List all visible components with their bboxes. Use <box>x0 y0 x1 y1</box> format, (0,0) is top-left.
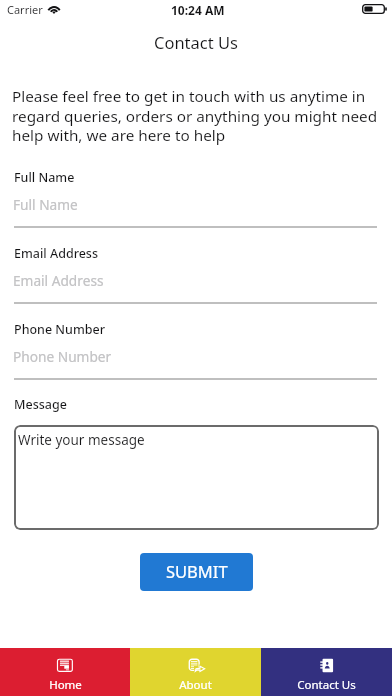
staticText: Write your message <box>18 431 145 449</box>
staticText: Email Address <box>14 245 99 262</box>
staticText: Carrier <box>7 2 43 17</box>
staticText: Phone Number <box>14 321 105 338</box>
staticText: Phone Number <box>13 347 112 366</box>
button[interactable]: Contact Us <box>261 648 392 696</box>
button[interactable]: Phone Number <box>0 320 392 380</box>
staticText: SUBMIT <box>166 560 228 582</box>
staticText: Home <box>49 677 82 693</box>
button[interactable]: SUBMIT <box>140 553 253 591</box>
staticText: Full Name <box>14 169 75 186</box>
button[interactable]: Full Name <box>0 168 392 228</box>
staticText: Message <box>14 396 67 413</box>
button[interactable]: About <box>130 648 261 696</box>
staticText: Contact Us <box>154 31 238 53</box>
staticText: About <box>179 677 212 693</box>
staticText: Please feel free to get in touch with us… <box>12 86 380 146</box>
staticText: Contact Us <box>297 677 356 693</box>
staticText: 10:24 AM <box>171 2 225 18</box>
button[interactable]: Email Address <box>0 244 392 304</box>
button[interactable]: Home <box>0 648 130 696</box>
staticText: Full Name <box>13 195 78 214</box>
button[interactable]: Write your message <box>14 425 379 530</box>
staticText: Email Address <box>13 271 104 290</box>
